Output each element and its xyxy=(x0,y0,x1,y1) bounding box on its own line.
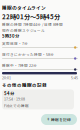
staticText: 睡眠中・7時間 22分 xyxy=(2,63,37,68)
staticText: 5時30分 xyxy=(2,33,19,39)
staticText: 22時01分〜5時45分 xyxy=(2,12,60,21)
button[interactable]: 54分 xyxy=(2,89,74,109)
staticText: 5:45 xyxy=(71,75,78,80)
staticText: 実際就寝・7分 xyxy=(2,41,28,46)
staticText: 睡眠のタイムライン xyxy=(2,4,46,11)
staticText: 寝付きにかかった時間・58分 xyxy=(2,52,54,57)
staticText: 睡眠の時間 7時間44分 / 目標 8時間 xyxy=(2,22,63,27)
staticText: 現在の睡眠スケジュール xyxy=(2,28,45,33)
staticText: 54分 xyxy=(4,90,14,96)
button[interactable]: + xyxy=(41,114,77,125)
staticText: その他の睡眠の記録 xyxy=(2,82,47,88)
staticText: Fitbit での睡眠 xyxy=(4,103,29,108)
staticText: 20:01 xyxy=(2,75,11,80)
staticText: 睡眠を記録 xyxy=(51,117,71,122)
staticText: + xyxy=(47,116,50,123)
staticText: 17:54 - 19:08 xyxy=(4,96,25,102)
